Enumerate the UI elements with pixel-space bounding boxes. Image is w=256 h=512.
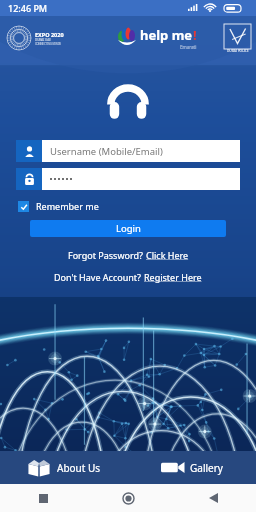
button[interactable]: Remember me (18, 200, 99, 212)
button[interactable]: Gallery (128, 451, 256, 484)
button[interactable]: Register Here (144, 271, 202, 283)
staticText: Username (Mobile/Email) (50, 145, 163, 158)
button[interactable]: Back (171, 484, 256, 512)
staticText: Gallery (190, 461, 223, 475)
staticText: Don't Have Account? (54, 271, 144, 283)
staticText: Click Here (146, 249, 189, 261)
staticText: 12:46 PM (8, 2, 48, 14)
staticText: help me (140, 26, 193, 44)
staticText: Register Here (144, 271, 202, 283)
staticText: Remember me (36, 200, 99, 212)
button[interactable]: About Us (0, 451, 128, 484)
button[interactable]: Recent apps (0, 484, 86, 512)
staticText: ! (193, 26, 197, 44)
staticText: DUBAI UAE (35, 38, 51, 42)
staticText: CONNECTING MINDS (35, 42, 62, 46)
button[interactable]: Username (Mobile/Email) (16, 140, 240, 162)
staticText: Emarati (180, 44, 197, 50)
button[interactable] (16, 168, 240, 190)
button[interactable]: Click Here (146, 249, 189, 261)
button[interactable]: Login (30, 220, 226, 237)
staticText: Login (116, 222, 141, 235)
staticText: DUBAI POLICE (227, 49, 249, 53)
staticText: About Us (57, 461, 101, 475)
button[interactable]: Home (86, 484, 171, 512)
staticText: Forgot Password? (68, 249, 146, 261)
staticText: EXPO 2020 (35, 31, 64, 38)
